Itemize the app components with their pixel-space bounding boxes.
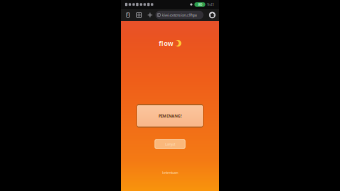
staticText: 1: [127, 13, 129, 17]
button[interactable]: Scan QR code: [133, 9, 144, 21]
staticText: kiwi-extension.cf/hpa: [162, 12, 197, 18]
staticText: ketentuan: [162, 170, 178, 175]
button[interactable]: Tabs: [122, 9, 133, 21]
button[interactable]: New tab: [144, 9, 155, 21]
staticText: 9:41: [207, 2, 214, 7]
button[interactable]: Home: [207, 9, 217, 21]
staticText: PEMENANG!: [158, 113, 181, 118]
button[interactable]: kiwi-extension.cf/hpa: [155, 11, 203, 19]
staticText: Lanjut: [165, 141, 175, 147]
staticText: flow: [159, 39, 174, 48]
staticText: 80: [198, 2, 202, 7]
button[interactable]: Lanjut: [154, 139, 185, 149]
